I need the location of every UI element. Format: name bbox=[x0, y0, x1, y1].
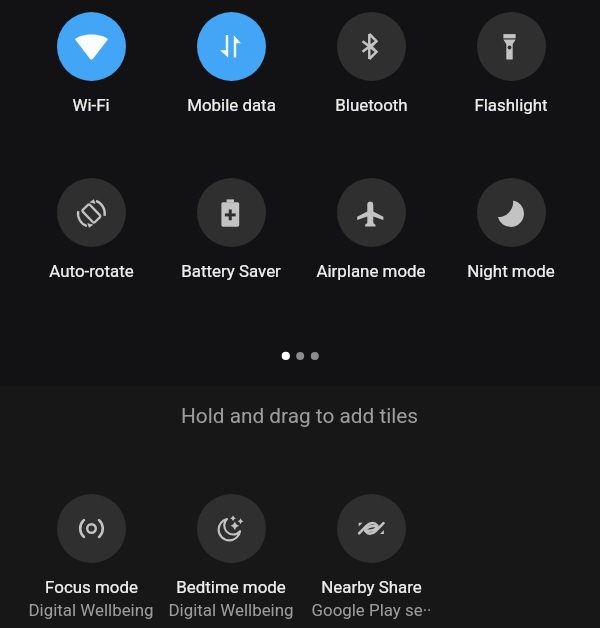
staticText: Battery Saver bbox=[181, 261, 281, 281]
other: Wi-Fi bbox=[57, 12, 126, 81]
other: Mobile data bbox=[197, 12, 266, 81]
button[interactable]: Bedtime mode bbox=[161, 494, 301, 620]
other: Focus mode bbox=[57, 494, 126, 563]
button[interactable]: Auto-rotate bbox=[21, 178, 161, 281]
staticText: Flashlight bbox=[474, 95, 548, 115]
other: Bluetooth bbox=[337, 12, 406, 81]
staticText: Mobile data bbox=[187, 95, 276, 115]
other: Auto-rotate bbox=[57, 178, 126, 247]
button[interactable]: Airplane mode bbox=[301, 178, 441, 281]
staticText: Digital Wellbeing bbox=[28, 600, 154, 620]
button[interactable]: Battery Saver bbox=[161, 178, 301, 281]
button[interactable]: Bluetooth bbox=[301, 12, 441, 115]
other: Nearby Share bbox=[337, 494, 406, 563]
button[interactable]: Wi-Fi bbox=[21, 12, 161, 115]
staticText: Hold and drag to add tiles bbox=[181, 404, 419, 428]
other: Airplane mode bbox=[337, 178, 406, 247]
other: Flashlight bbox=[477, 12, 546, 81]
button[interactable]: Night mode bbox=[441, 178, 581, 281]
staticText: Wi-Fi bbox=[72, 95, 110, 115]
other: Bedtime mode bbox=[197, 494, 266, 563]
staticText: Auto-rotate bbox=[49, 261, 134, 281]
button[interactable]: Nearby Share bbox=[301, 494, 441, 620]
staticText: Airplane mode bbox=[316, 261, 426, 281]
other: Night mode bbox=[477, 178, 546, 247]
staticText: Focus mode bbox=[45, 577, 138, 597]
button[interactable]: Mobile data bbox=[161, 12, 301, 115]
staticText: Nearby Share bbox=[321, 577, 422, 597]
other: Battery Saver bbox=[197, 178, 266, 247]
staticText: Bedtime mode bbox=[176, 577, 286, 597]
button[interactable]: Focus mode bbox=[21, 494, 161, 620]
staticText: Night mode bbox=[467, 261, 555, 281]
staticText: Bluetooth bbox=[335, 95, 408, 115]
button[interactable]: Flashlight bbox=[441, 12, 581, 115]
staticText: Digital Wellbeing bbox=[168, 600, 294, 620]
staticText: Google Play se·· bbox=[311, 600, 432, 620]
